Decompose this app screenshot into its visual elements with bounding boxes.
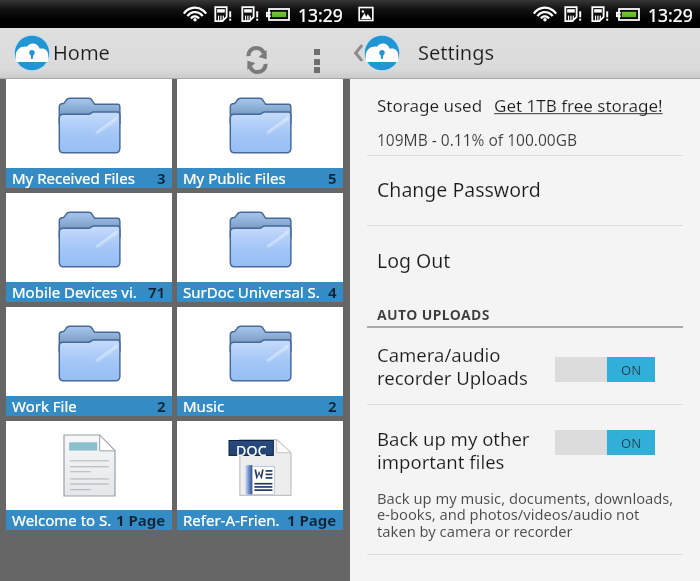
staticText: Work File [12, 396, 77, 416]
staticText: 1 Page [116, 510, 166, 530]
staticText: Music [183, 396, 225, 416]
staticText: SurDoc Universal S. [183, 282, 320, 302]
button[interactable]: Welcome to S. [6, 421, 172, 530]
staticText: Settings [418, 39, 495, 66]
button[interactable]: More options [296, 40, 338, 82]
staticText: 2 [157, 396, 166, 416]
staticText: Mobile Devices vi. [12, 282, 137, 302]
button[interactable]: Mobile Devices vi. [6, 193, 172, 302]
staticText: Get 1TB free storage! [494, 94, 663, 117]
staticText: Back up my other important files [377, 426, 530, 474]
button[interactable]: Log Out [350, 226, 700, 291]
staticText: Home [53, 39, 110, 66]
staticText: Camera/audio recorder Uploads [377, 342, 528, 390]
button[interactable]: Work File [6, 307, 172, 416]
button[interactable]: Change Password [350, 156, 700, 224]
staticText: AUTO UPLOADS [377, 305, 490, 324]
staticText: 4 [328, 282, 337, 302]
button[interactable]: Back [352, 42, 366, 64]
staticText: 3 [157, 168, 166, 188]
button[interactable]: Camera/audio recorder Uploads [350, 329, 700, 403]
staticText: ON [621, 361, 642, 379]
button[interactable]: Get 1TB free storage! [494, 94, 663, 117]
staticText: 2 [328, 396, 337, 416]
staticText: Welcome to S. [12, 510, 112, 530]
staticText: 1 Page [287, 510, 337, 530]
staticText: Change Password [377, 176, 541, 203]
button[interactable]: My Received Files [6, 79, 172, 188]
button[interactable]: DOC [177, 421, 343, 530]
staticText: 71 [148, 282, 166, 302]
staticText: Back up my music, documents, downloads, … [377, 488, 674, 541]
button[interactable]: Music [177, 307, 343, 416]
button[interactable]: My Public Files [177, 79, 343, 188]
staticText: 13:29 [298, 3, 343, 27]
staticText: Storage used [377, 94, 483, 117]
staticText: My Received Files [12, 168, 135, 188]
button[interactable]: Back up my other important files [350, 413, 700, 487]
staticText: 109MB - 0.11% of 100.00GB [377, 129, 578, 150]
staticText: Log Out [377, 247, 451, 274]
staticText: DOC [236, 441, 267, 460]
staticText: ON [621, 434, 642, 452]
staticText: 13:29 [648, 3, 693, 27]
staticText: Refer-A-Frien. [183, 510, 280, 530]
button[interactable]: SurDoc Universal S. [177, 193, 343, 302]
button[interactable]: Refresh [233, 41, 281, 79]
staticText: 5 [328, 168, 337, 188]
staticText: My Public Files [183, 168, 286, 188]
